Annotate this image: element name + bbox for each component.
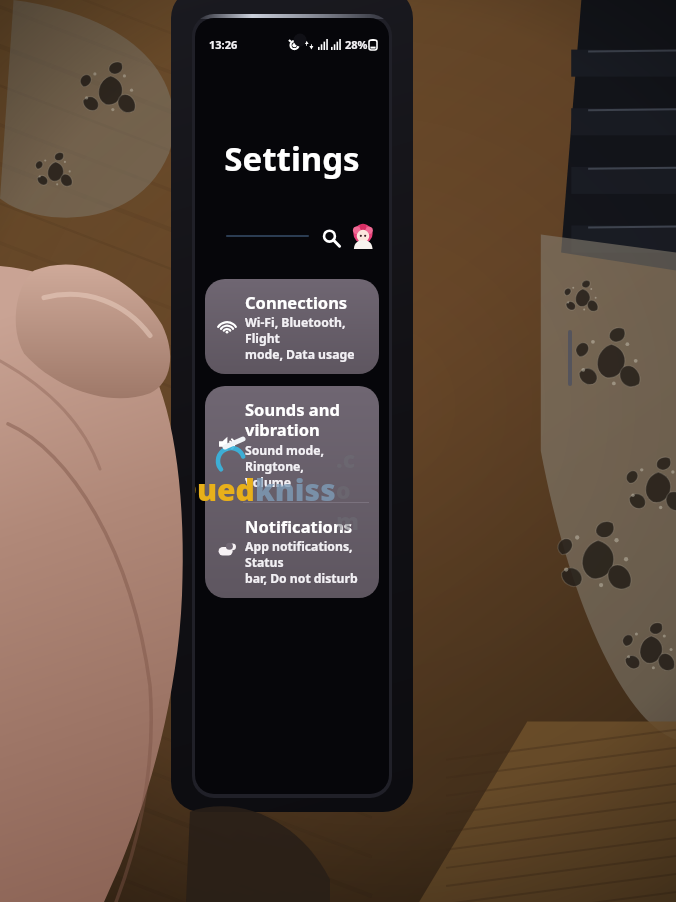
button[interactable]: Connections [205,279,379,374]
staticText: Settings [195,136,389,181]
button[interactable]: Sounds and vibration [205,386,379,502]
button[interactable]: Search settings [315,222,345,252]
button[interactable]: Notifications [205,503,379,598]
staticText: Sounds and vibration [245,398,340,441]
staticText: .com [336,443,367,536]
staticText: Notifications [245,515,352,537]
button[interactable]: Samsung account profile [347,221,379,253]
staticText: Wi-Fi, Bluetooth, Flight mode, Data usag… [245,314,371,362]
staticText: kniss [255,469,336,510]
staticText: 13:26 [209,37,238,52]
staticText: Connections [245,291,348,313]
staticText: Sound mode, Ringtone, Volume [245,442,371,490]
staticText: 28% [345,37,368,52]
staticText: Oued [195,469,255,510]
staticText: App notifications, Status bar, Do not di… [245,538,371,586]
